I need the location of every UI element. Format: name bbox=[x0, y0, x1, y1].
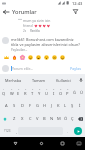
staticText: R bbox=[24, 91, 27, 97]
staticText: mum ya sizin icin bbox=[23, 18, 51, 23]
button[interactable]: S bbox=[10, 99, 18, 112]
button[interactable]: X bbox=[18, 112, 26, 125]
button[interactable]: Yorum ekle... bbox=[11, 66, 68, 71]
staticText: U bbox=[45, 91, 48, 97]
button[interactable]: Reaction 7 bbox=[50, 53, 58, 61]
button[interactable]: Reaction 3 bbox=[18, 53, 26, 61]
staticText: . bbox=[67, 129, 68, 134]
button[interactable]: Reaction 8 bbox=[58, 53, 66, 61]
button[interactable]: V bbox=[34, 112, 41, 125]
staticText: 0 bbox=[67, 88, 69, 91]
button[interactable]: N bbox=[48, 112, 55, 125]
staticText: G bbox=[36, 103, 39, 109]
button[interactable]: Back bbox=[0, 6, 11, 17]
button[interactable]: Ü bbox=[78, 86, 85, 99]
button[interactable]: ?123 bbox=[1, 126, 14, 136]
button[interactable]: M bbox=[55, 112, 62, 125]
button[interactable]: Ö bbox=[62, 112, 69, 125]
button[interactable]: 6 bbox=[36, 86, 43, 99]
staticText: C bbox=[29, 116, 32, 122]
staticText: J bbox=[51, 103, 53, 109]
staticText: F bbox=[29, 103, 32, 109]
button[interactable]: Filter bbox=[70, 6, 81, 17]
staticText: N bbox=[50, 116, 54, 122]
button[interactable]: Send bbox=[71, 126, 84, 136]
button[interactable]: Kullanici bbox=[51, 74, 76, 86]
staticText: X bbox=[21, 116, 24, 122]
staticText: A bbox=[5, 103, 8, 109]
button[interactable]: D bbox=[18, 99, 26, 112]
staticText: Ç bbox=[71, 116, 74, 122]
button[interactable]: Ğ bbox=[71, 86, 78, 99]
staticText: W bbox=[10, 91, 14, 97]
button[interactable]: H bbox=[41, 99, 48, 112]
staticText: 8 bbox=[53, 88, 55, 91]
staticText: friend bbox=[23, 23, 33, 28]
staticText: L bbox=[64, 103, 67, 109]
staticText: 6 bbox=[39, 88, 41, 91]
staticText: T bbox=[31, 91, 34, 97]
button[interactable]: Z bbox=[10, 112, 18, 125]
button[interactable]: 0 bbox=[64, 86, 71, 99]
staticText: M bbox=[57, 116, 61, 122]
staticText: Ü bbox=[80, 90, 83, 96]
button[interactable]: Merhaba bbox=[0, 74, 26, 86]
staticText: Tamam bbox=[32, 78, 46, 83]
button[interactable]: Reaction 1 bbox=[2, 53, 10, 61]
button[interactable]: Ç bbox=[69, 112, 76, 125]
staticText: 2 bbox=[11, 88, 13, 91]
button[interactable]: Back bbox=[0, 137, 30, 150]
button[interactable]: 8 bbox=[50, 86, 57, 99]
button[interactable]: Hide keyboard bbox=[72, 137, 85, 150]
button[interactable]: L bbox=[62, 99, 69, 112]
staticText: B bbox=[43, 116, 46, 122]
button[interactable]: Tamam bbox=[26, 74, 51, 86]
button[interactable]: Ş bbox=[69, 99, 76, 112]
staticText: P bbox=[66, 91, 69, 97]
button[interactable]: Home bbox=[30, 137, 52, 150]
staticText: S bbox=[13, 103, 16, 109]
button[interactable]: J bbox=[48, 99, 55, 112]
staticText: Yanitla bbox=[30, 29, 40, 33]
staticText: İ bbox=[79, 103, 81, 109]
button[interactable]: F bbox=[26, 99, 34, 112]
button[interactable]: 7 bbox=[43, 86, 50, 99]
staticText: D bbox=[21, 103, 24, 109]
button[interactable]: Reaction 6 bbox=[42, 53, 50, 61]
button[interactable]: 1 bbox=[0, 86, 8, 99]
button[interactable]: A bbox=[2, 99, 10, 112]
staticText: 5 bbox=[32, 88, 34, 91]
staticText: Paylasilan... bbox=[11, 48, 28, 52]
button[interactable]: 9 bbox=[57, 86, 64, 99]
button[interactable]: Reaction 5 bbox=[34, 53, 42, 61]
button[interactable]: 4 bbox=[22, 86, 29, 99]
button[interactable]: 2 bbox=[8, 86, 15, 99]
staticText: 9 bbox=[60, 88, 62, 91]
button[interactable]: G bbox=[34, 99, 41, 112]
button[interactable]: Reaction 4 bbox=[26, 53, 34, 61]
staticText: 1 bbox=[3, 88, 5, 91]
staticText: V bbox=[36, 116, 39, 122]
button[interactable]: C bbox=[26, 112, 34, 125]
button[interactable]: Comma bbox=[14, 126, 18, 136]
button[interactable]: Yanitla bbox=[30, 29, 40, 33]
button[interactable]: Shift bbox=[0, 112, 10, 125]
button[interactable]: Backspace bbox=[76, 112, 85, 125]
button[interactable]: K bbox=[55, 99, 62, 112]
button[interactable]: 3 bbox=[15, 86, 22, 99]
staticText: Yorum ekle... bbox=[12, 66, 34, 71]
button[interactable]: İ bbox=[76, 99, 83, 112]
staticText: K bbox=[57, 103, 60, 109]
button[interactable]: Recent apps bbox=[52, 137, 72, 150]
button[interactable]: Paylas bbox=[68, 66, 83, 71]
button[interactable]: Voice input bbox=[76, 74, 85, 86]
button[interactable]: 5 bbox=[29, 86, 36, 99]
staticText: 7 bbox=[46, 88, 48, 91]
staticText: Yorumlar bbox=[12, 8, 37, 16]
button[interactable]: Reaction 2 bbox=[10, 53, 18, 61]
staticText: 12:43 bbox=[72, 1, 83, 6]
staticText: Merhaba bbox=[5, 78, 22, 83]
button[interactable]: B bbox=[41, 112, 48, 125]
